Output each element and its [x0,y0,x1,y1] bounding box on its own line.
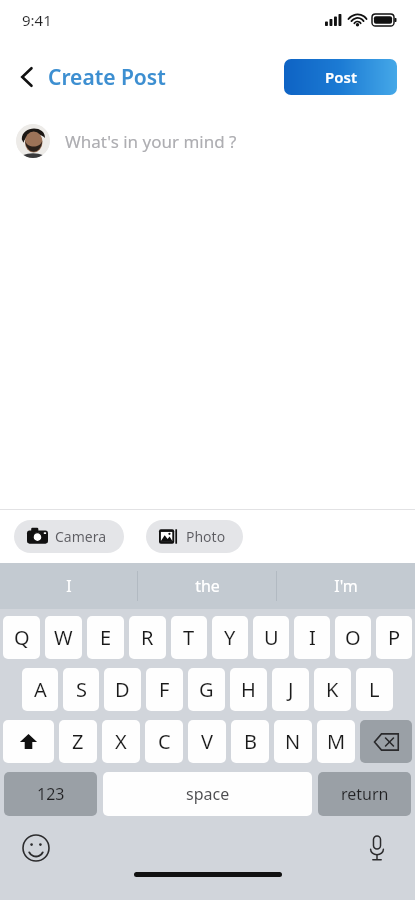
staticText: V [201,728,213,755]
button[interactable]: B [231,720,269,763]
button[interactable]: O [335,616,371,659]
staticText: A [34,676,47,703]
other: Back [12,62,42,92]
staticText: O [345,624,361,651]
staticText: J [288,676,294,703]
button[interactable]: I [294,616,330,659]
button[interactable]: Backspace [360,720,412,763]
button[interactable]: L [356,668,393,711]
staticText: K [326,676,339,703]
button[interactable]: Y [212,616,248,659]
button[interactable]: F [146,668,183,711]
staticText: C [158,728,171,755]
button[interactable]: T [171,616,207,659]
staticText: N [285,728,301,755]
button[interactable]: U [253,616,289,659]
button[interactable]: 123 [4,772,97,816]
staticText: Q [14,624,30,651]
button[interactable]: M [317,720,355,763]
staticText: P [388,624,401,651]
button[interactable]: V [188,720,226,763]
button[interactable]: return [318,772,411,816]
button[interactable]: C [145,720,183,763]
staticText: L [369,676,380,703]
staticText: Y [224,624,236,651]
button[interactable]: A [22,668,58,711]
staticText: the [195,575,220,597]
button[interactable]: X [102,720,140,763]
button[interactable]: space [103,772,312,816]
button[interactable]: Z [59,720,97,763]
staticText: B [244,728,257,755]
staticText: Z [72,728,84,755]
button[interactable]: Photo [146,520,243,553]
staticText: 9:41 [22,10,52,30]
staticText: M [327,728,346,755]
staticText: Camera [55,527,107,546]
staticText: F [159,676,170,703]
staticText: Post [325,67,357,87]
button[interactable]: Dictation [361,832,393,864]
staticText: Create Post [48,63,166,92]
button[interactable]: I'm [277,563,415,609]
button[interactable]: S [63,668,99,711]
staticText: space [186,783,230,805]
button[interactable]: E [87,616,124,659]
button[interactable]: J [272,668,309,711]
button[interactable]: Q [3,616,40,659]
staticText: S [76,676,87,703]
staticText: R [141,624,154,651]
staticText: I [309,624,316,651]
staticText: D [115,676,130,703]
staticText: W [54,624,73,651]
staticText: X [115,728,127,755]
button[interactable]: N [274,720,312,763]
button[interactable]: G [188,668,225,711]
button[interactable]: I [0,563,137,609]
button[interactable]: the [138,563,276,609]
button[interactable]: R [129,616,166,659]
staticText: G [199,676,214,703]
button[interactable]: Post [284,59,397,95]
button[interactable]: Camera [14,520,124,553]
button[interactable]: W [45,616,82,659]
button[interactable]: Back [12,62,166,92]
staticText: return [341,783,389,805]
staticText: E [100,624,112,651]
staticText: T [183,624,195,651]
staticText: 123 [37,783,65,805]
staticText: I [66,575,72,597]
button[interactable]: Shift [3,720,54,763]
button[interactable]: P [376,616,412,659]
staticText: H [241,676,256,703]
button[interactable]: D [104,668,141,711]
button[interactable]: K [314,668,351,711]
staticText: Photo [186,527,226,546]
staticText: U [264,624,279,651]
button[interactable]: Emoji [20,832,52,864]
staticText: I'm [334,575,358,597]
staticText: What's in your mind ? [65,130,237,153]
button[interactable]: H [230,668,267,711]
